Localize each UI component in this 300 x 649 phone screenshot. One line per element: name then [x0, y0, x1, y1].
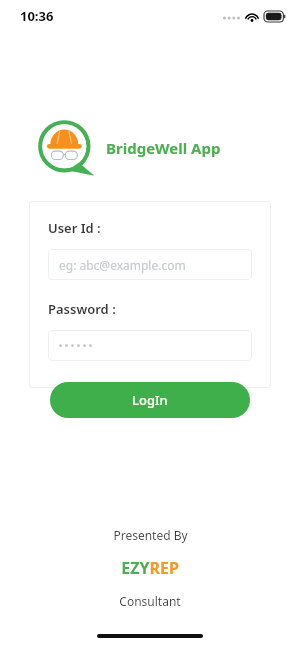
button[interactable]: LogIn [50, 382, 250, 418]
staticText: Presented By [113, 527, 188, 543]
staticText: User Id : [48, 219, 101, 237]
button[interactable] [48, 330, 252, 361]
staticText: EZYREP [121, 557, 179, 579]
staticText: BridgeWell App [106, 138, 221, 158]
button[interactable]: eg: abc@example.com [48, 249, 252, 280]
staticText: Password : [48, 300, 116, 318]
staticText: 10:36 [20, 7, 54, 25]
staticText: LogIn [132, 391, 168, 409]
staticText: Consultant [119, 593, 181, 609]
staticText: eg: abc@example.com [59, 257, 186, 273]
